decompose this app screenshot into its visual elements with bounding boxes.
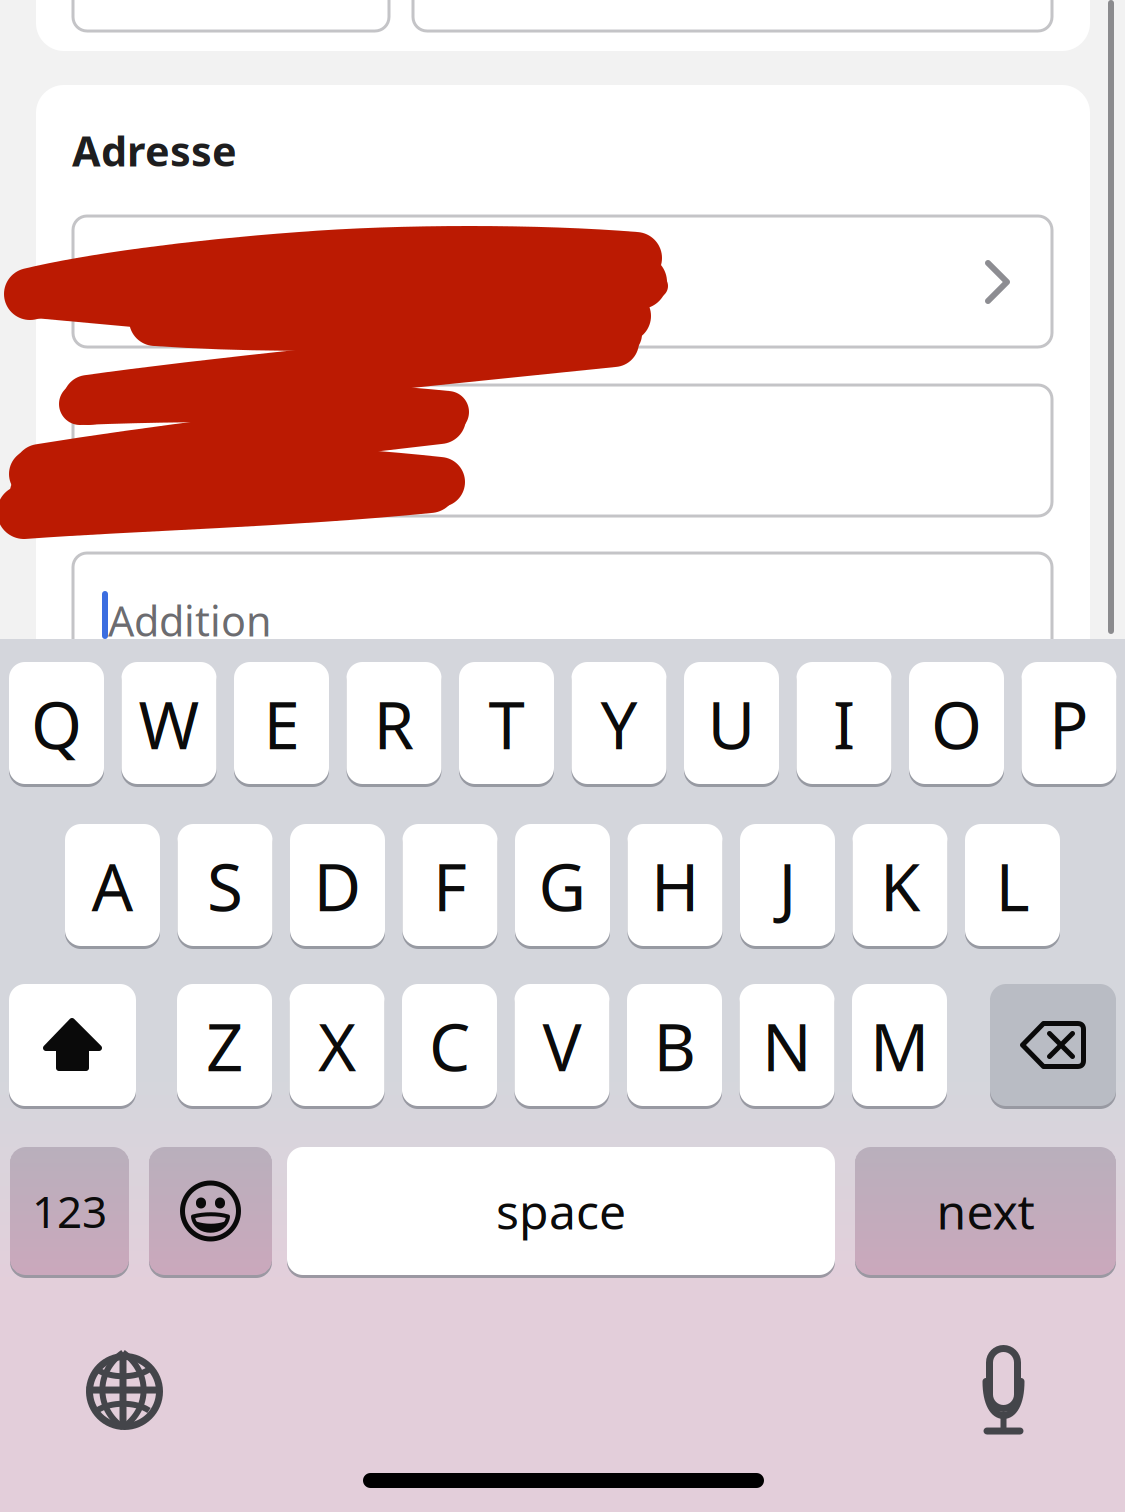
button[interactable]: Y (571, 660, 666, 786)
staticText: Y (600, 681, 637, 767)
staticText: F (433, 843, 467, 929)
staticText: Adresse (72, 123, 237, 178)
button[interactable]: Shift (9, 982, 136, 1108)
staticText: Q (31, 681, 82, 767)
staticText: Z (206, 1003, 243, 1089)
button[interactable]: L (965, 822, 1060, 948)
button[interactable]: X (289, 982, 384, 1108)
staticText: C (429, 1003, 470, 1089)
button[interactable]: Z (177, 982, 272, 1108)
staticText: L (995, 843, 1029, 929)
staticText: W (138, 681, 199, 767)
button[interactable]: Q (9, 660, 104, 786)
staticText: space (496, 1179, 626, 1243)
button[interactable]: P (1021, 660, 1116, 786)
staticText: P (1049, 681, 1089, 767)
button[interactable]: M (852, 982, 947, 1108)
button[interactable]: N (739, 982, 834, 1108)
button[interactable]: H (627, 822, 722, 948)
button[interactable]: J (740, 822, 835, 948)
button[interactable]: Space (287, 1145, 835, 1277)
staticText: J (778, 843, 796, 929)
staticText: U (707, 681, 755, 767)
button[interactable]: T (459, 660, 554, 786)
button[interactable]: U (684, 660, 779, 786)
staticText: S (207, 843, 243, 929)
button[interactable]: S (177, 822, 272, 948)
staticText: 123 (32, 1182, 107, 1240)
button[interactable]: I (796, 660, 891, 786)
staticText: next (936, 1179, 1034, 1243)
staticText: N (762, 1003, 812, 1089)
staticText: I (833, 681, 855, 767)
button[interactable]: Next keyboard (86, 1353, 163, 1430)
button[interactable]: Numbers (10, 1145, 129, 1277)
staticText: V (542, 1003, 581, 1089)
button[interactable]: V (514, 982, 609, 1108)
staticText: D (313, 843, 361, 929)
button[interactable]: O (909, 660, 1004, 786)
staticText: Addition (108, 593, 272, 648)
button[interactable]: B (627, 982, 722, 1108)
button[interactable]: Adresse (73, 216, 1052, 347)
button[interactable]: D (290, 822, 385, 948)
button[interactable]: A (65, 822, 160, 948)
staticText: H (651, 843, 699, 929)
button[interactable]: K (852, 822, 947, 948)
staticText: X (318, 1003, 356, 1089)
staticText: A (91, 843, 133, 929)
button[interactable]: G (515, 822, 610, 948)
button[interactable]: Dictation (979, 1347, 1028, 1435)
staticText: T (488, 681, 524, 767)
button[interactable]: E (234, 660, 329, 786)
staticText: O (931, 681, 982, 767)
staticText: K (880, 843, 920, 929)
button[interactable]: Addition (73, 553, 1052, 684)
button[interactable]: Next (855, 1145, 1116, 1277)
button[interactable]: Emoji (149, 1145, 272, 1277)
staticText: E (263, 681, 299, 767)
button[interactable]: Delete (990, 982, 1116, 1108)
staticText: R (373, 681, 414, 767)
button[interactable]: R (346, 660, 441, 786)
staticText: G (538, 843, 586, 929)
button[interactable]: W (121, 660, 216, 786)
button[interactable]: C (402, 982, 497, 1108)
staticText: B (653, 1003, 695, 1089)
button[interactable]: F (402, 822, 497, 948)
staticText: M (870, 1003, 929, 1089)
button[interactable]: Adresszusatz (73, 385, 1052, 516)
